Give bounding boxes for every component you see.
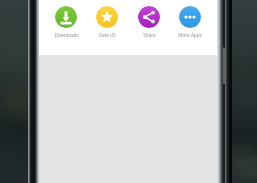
staticText: Rate US [99, 32, 116, 38]
staticText: Downloads [54, 32, 79, 38]
button[interactable]: Share [129, 0, 169, 38]
button[interactable]: Downloads [46, 0, 86, 38]
button[interactable]: More Apps [170, 0, 210, 38]
staticText: More Apps [178, 32, 202, 38]
staticText: Share [143, 32, 156, 38]
button[interactable]: Rate US [87, 0, 127, 38]
